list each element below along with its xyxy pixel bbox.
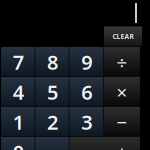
staticText: 9 bbox=[81, 49, 92, 75]
button[interactable]: 5 bbox=[35, 77, 70, 107]
button[interactable]: 4 bbox=[1, 77, 35, 107]
staticText: 4 bbox=[13, 79, 24, 105]
button[interactable]: 2 bbox=[35, 107, 70, 137]
staticText: × bbox=[116, 80, 127, 104]
button[interactable]: CLEAR bbox=[104, 26, 142, 46]
staticText: 2 bbox=[47, 109, 58, 135]
button[interactable]: 1 bbox=[1, 107, 35, 137]
staticText: = bbox=[81, 139, 92, 150]
staticText: 8 bbox=[47, 49, 58, 75]
button[interactable]: 6 bbox=[70, 77, 104, 107]
staticText: + bbox=[116, 140, 127, 150]
button[interactable]: 9 bbox=[70, 47, 104, 77]
staticText: 6 bbox=[81, 79, 92, 105]
button[interactable]: − bbox=[104, 107, 140, 137]
staticText: CLEAR bbox=[112, 32, 133, 41]
staticText: 5 bbox=[47, 79, 58, 105]
staticText: . bbox=[49, 139, 55, 150]
button[interactable]: × bbox=[104, 77, 140, 107]
button[interactable]: 3 bbox=[70, 107, 104, 137]
staticText: − bbox=[116, 110, 127, 134]
staticText: 3 bbox=[81, 109, 92, 135]
staticText: 0 bbox=[13, 139, 24, 150]
staticText: 1 bbox=[13, 109, 24, 135]
button[interactable]: ÷ bbox=[104, 47, 140, 77]
button[interactable]: 0 bbox=[1, 137, 35, 150]
button[interactable]: = bbox=[70, 137, 104, 150]
button[interactable]: 7 bbox=[1, 47, 35, 77]
button[interactable]: . bbox=[35, 137, 70, 150]
staticText: 7 bbox=[13, 49, 24, 75]
button[interactable]: + bbox=[104, 137, 140, 150]
button[interactable]: 8 bbox=[35, 47, 70, 77]
staticText: ÷ bbox=[116, 50, 127, 74]
